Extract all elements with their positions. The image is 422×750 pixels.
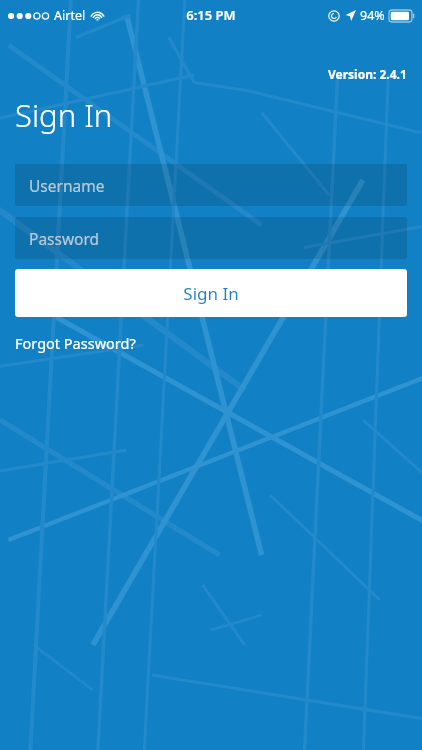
staticText: 6:15 PM bbox=[186, 6, 236, 24]
staticText: Username bbox=[29, 175, 105, 196]
staticText: Version: 2.4.1 bbox=[328, 66, 407, 82]
staticText: Airtel bbox=[54, 7, 86, 24]
staticText: Password bbox=[29, 228, 100, 249]
staticText: 94% bbox=[360, 7, 385, 24]
staticText: Forgot Password? bbox=[15, 333, 136, 353]
staticText: Sign In bbox=[15, 94, 113, 136]
button[interactable]: Password bbox=[15, 217, 407, 259]
button[interactable]: Username bbox=[15, 164, 407, 206]
staticText: Sign In bbox=[183, 282, 239, 305]
button[interactable]: Sign In bbox=[15, 269, 407, 317]
button[interactable]: Forgot Password? bbox=[15, 331, 136, 355]
